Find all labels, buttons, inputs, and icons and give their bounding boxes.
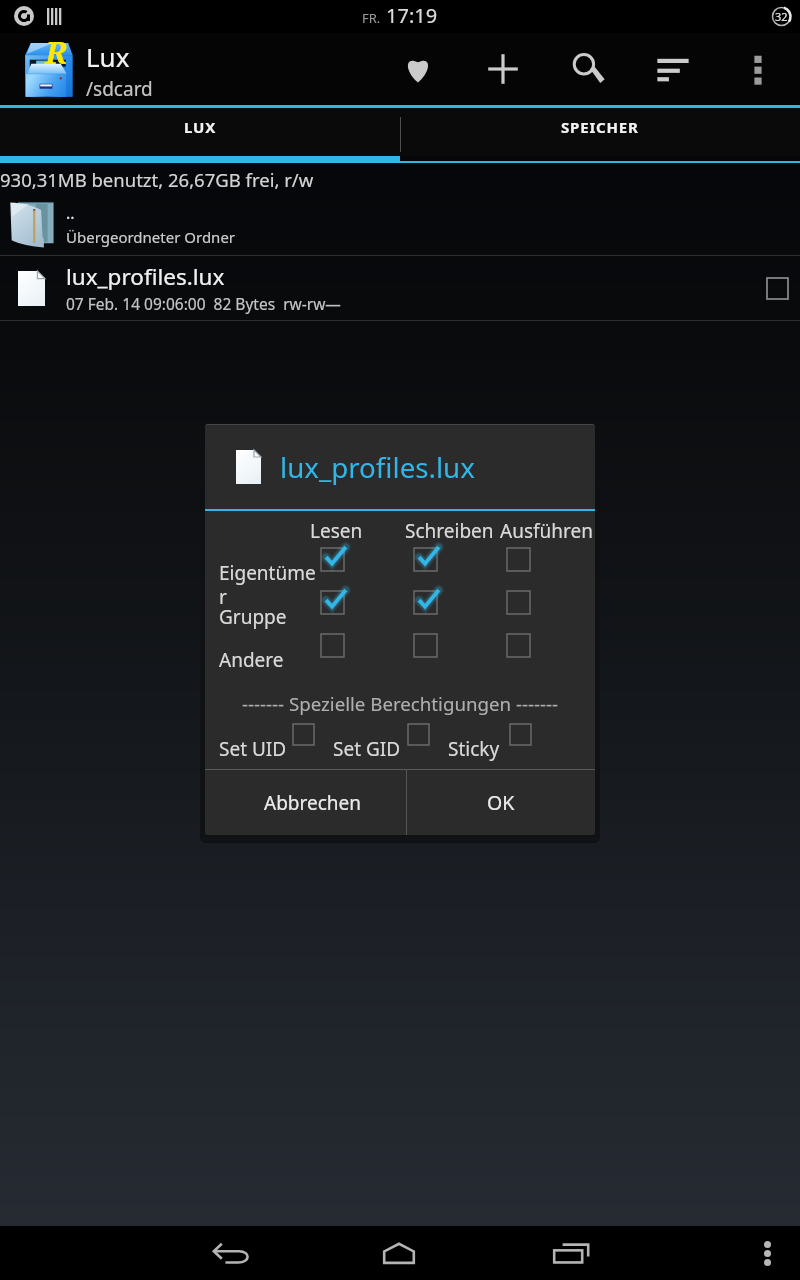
button[interactable]: Abbrechen <box>205 770 406 835</box>
button[interactable]: Eigentümer Lesen, checked <box>311 538 354 581</box>
button[interactable]: Gruppe Schreiben, checked <box>404 581 447 624</box>
staticText: Schreiben <box>405 518 494 544</box>
button[interactable]: Set GID, unchecked <box>398 714 439 755</box>
staticText: 930,31MB benutzt, 26,67GB frei, r/w <box>0 167 314 192</box>
staticText: Ausführen <box>500 518 593 544</box>
staticText: Abbrechen <box>264 790 362 816</box>
button[interactable]: Andere Lesen, unchecked <box>311 624 354 667</box>
button[interactable]: .. <box>0 195 800 255</box>
button[interactable]: LUX <box>0 108 400 156</box>
button[interactable]: Sticky, unchecked <box>500 714 541 755</box>
button[interactable]: More options <box>715 33 800 105</box>
staticText: Gruppe <box>219 604 287 630</box>
staticText: Lesen <box>310 518 363 544</box>
staticText: SPEICHER <box>561 117 639 137</box>
staticText: OK <box>487 789 515 816</box>
staticText: .. <box>66 202 75 224</box>
button[interactable]: Andere Ausführen, unchecked <box>497 624 540 667</box>
staticText: Sticky <box>448 736 500 762</box>
button[interactable]: lux_profiles.lux <box>0 256 800 320</box>
staticText: lux_profiles.lux <box>66 261 225 292</box>
staticText: r <box>219 584 227 610</box>
button[interactable]: Favorites <box>375 33 460 105</box>
button[interactable]: SPEICHER <box>400 108 800 156</box>
button[interactable]: Sort <box>630 33 715 105</box>
button[interactable]: Gruppe Lesen, checked <box>311 581 354 624</box>
staticText: R <box>45 31 67 73</box>
staticText: 32 <box>775 9 788 24</box>
staticText: lux_profiles.lux <box>280 448 475 486</box>
staticText: Andere <box>219 647 284 673</box>
staticText: Übergeordneter Ordner <box>66 227 236 247</box>
staticText: Lux <box>86 39 130 74</box>
button[interactable]: Home <box>362 1226 436 1280</box>
button[interactable]: New <box>460 33 545 105</box>
button[interactable]: Eigentümer Schreiben, checked <box>404 538 447 581</box>
button[interactable]: Set UID, unchecked <box>283 714 324 755</box>
button[interactable]: Select lux_profiles.lux <box>755 266 799 310</box>
button[interactable]: Back <box>194 1226 268 1280</box>
staticText: Set GID <box>333 736 401 762</box>
staticText: /sdcard <box>86 76 153 102</box>
staticText: 17:19 <box>386 2 438 29</box>
staticText: Eigentüme <box>219 560 316 586</box>
button[interactable]: Menu <box>734 1226 800 1280</box>
staticText: 07 Feb. 14 09:06:00 82 Bytes rw-rw— <box>66 293 341 314</box>
staticText: Set UID <box>219 736 287 762</box>
button[interactable]: Gruppe Ausführen, unchecked <box>497 581 540 624</box>
button[interactable]: Eigentümer Ausführen, unchecked <box>497 538 540 581</box>
button[interactable]: Andere Schreiben, unchecked <box>404 624 447 667</box>
staticText: LUX <box>184 117 217 137</box>
staticText: ------- Spezielle Berechtigungen ------- <box>242 691 559 716</box>
staticText: FR. <box>362 9 381 27</box>
button[interactable]: OK <box>407 770 595 835</box>
button[interactable]: Search <box>545 33 630 105</box>
button[interactable]: Recent apps <box>534 1226 608 1280</box>
